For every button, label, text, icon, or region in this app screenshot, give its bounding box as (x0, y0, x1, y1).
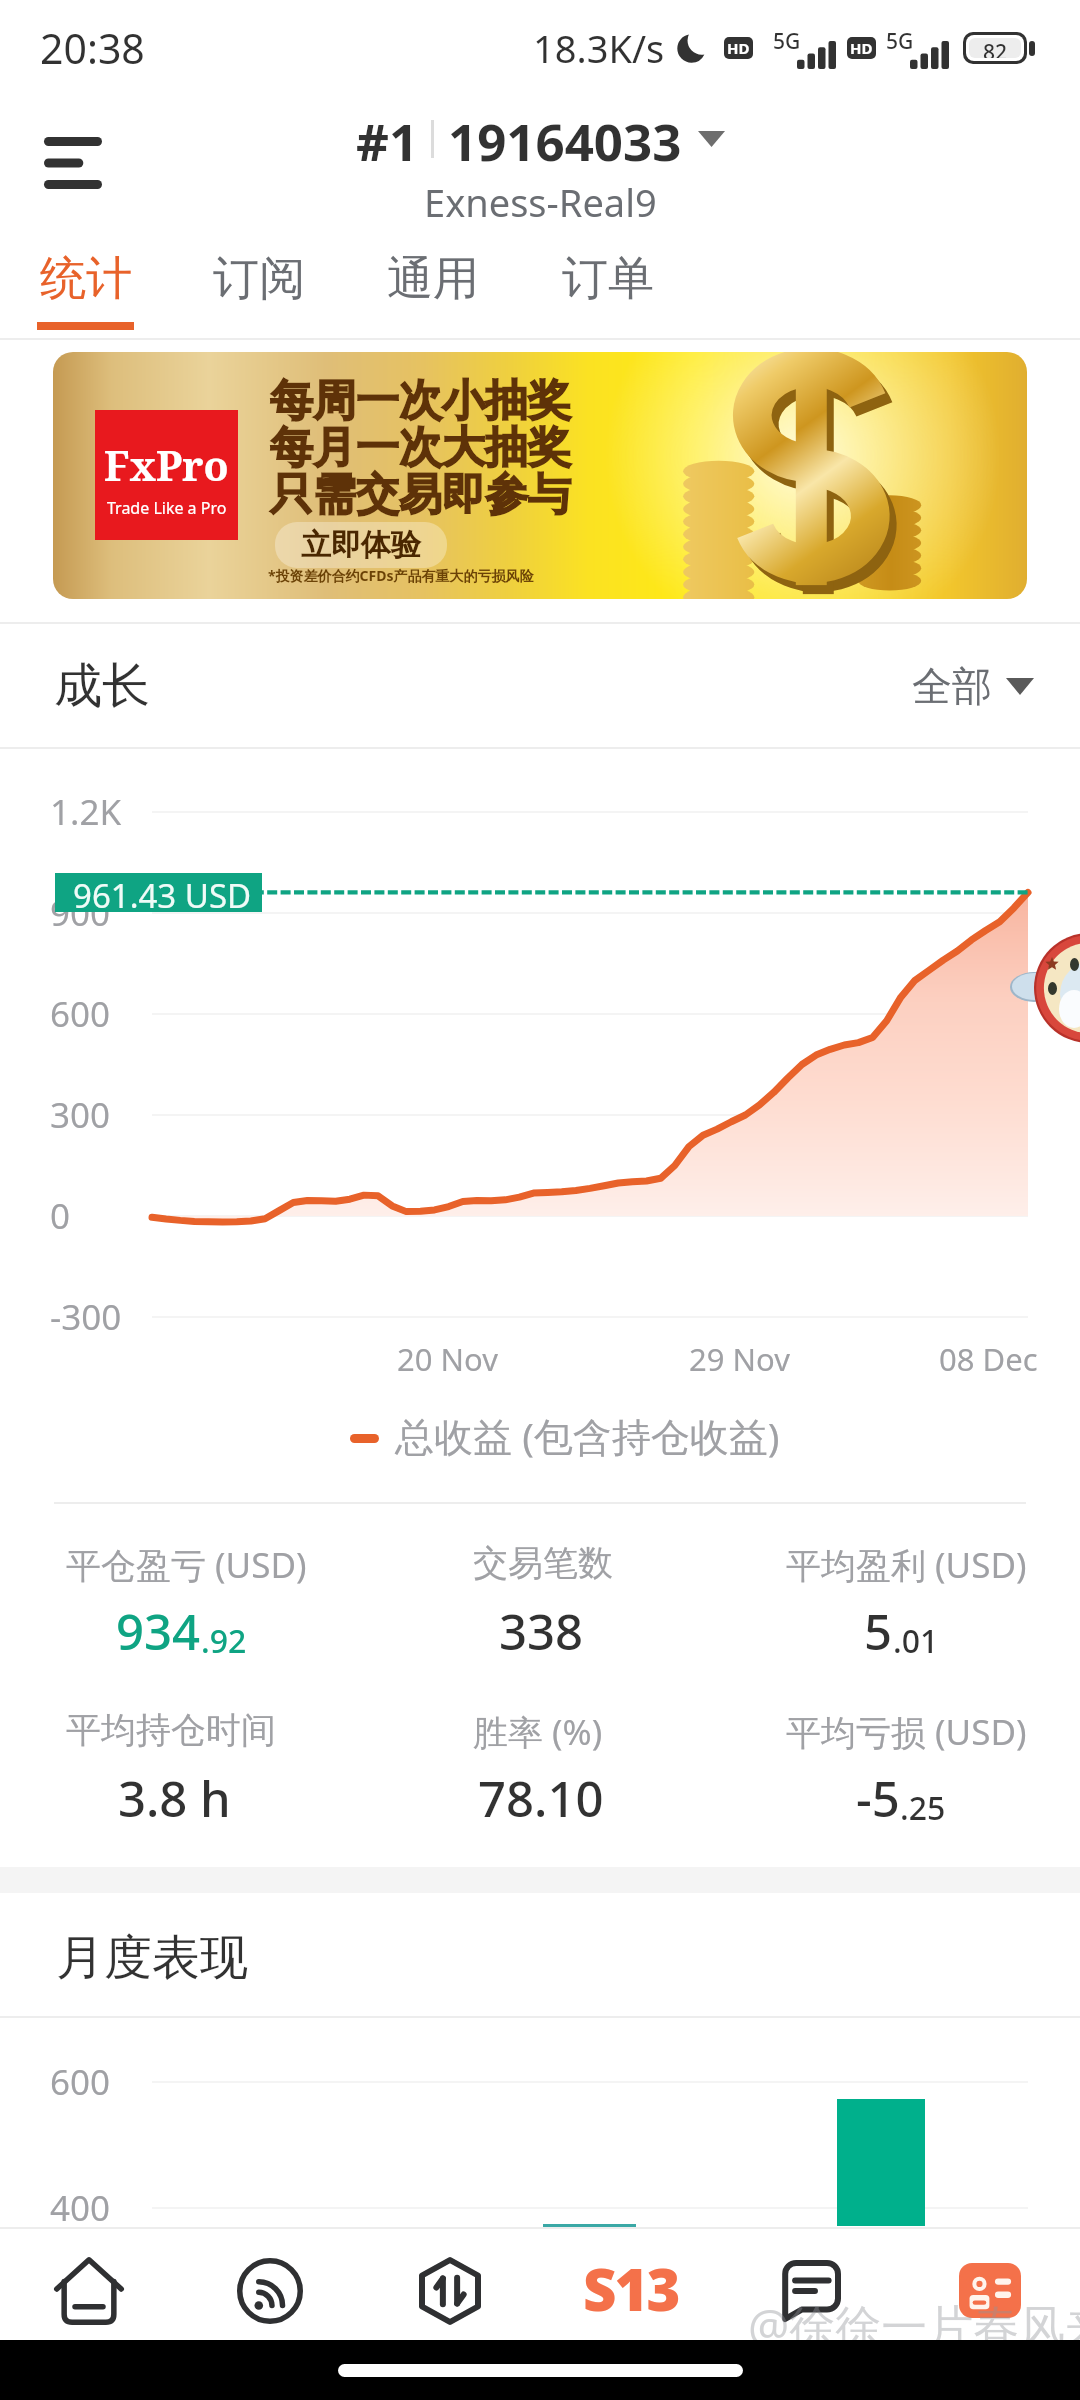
staticText: Exness-Real9 (424, 176, 657, 222)
staticText: 5G (886, 27, 914, 56)
staticText: Trade Like a Pro (107, 497, 227, 519)
staticText: 934 (116, 1598, 201, 1665)
staticText: 600 (50, 2058, 111, 2106)
staticText: .25 (900, 1786, 946, 1830)
staticText: 每周一次小抽奖 (270, 374, 571, 428)
staticText: 平均亏损 (USD) (786, 1708, 1027, 1756)
button[interactable]: S13 (541, 2235, 721, 2346)
staticText: 29 Nov (689, 1338, 790, 1380)
button[interactable]: 订单 (537, 222, 679, 340)
staticText: .92 (201, 1619, 247, 1663)
staticText: 5 (864, 1598, 893, 1665)
button[interactable]: FxPro (53, 352, 1027, 599)
staticText: 统计 (40, 250, 132, 308)
button[interactable]: Home (0, 2235, 179, 2346)
staticText: 订单 (562, 250, 654, 308)
staticText: FxPro (104, 437, 229, 493)
staticText: 5G (773, 27, 801, 56)
button[interactable]: 通用 (362, 222, 504, 340)
button[interactable]: 订阅 (188, 222, 330, 340)
staticText: 0 (50, 1192, 71, 1240)
staticText: 交易笔数 (473, 1541, 613, 1585)
staticText: -300 (50, 1293, 122, 1341)
staticText: 总收益 (包含持仓收益) (395, 1409, 780, 1462)
staticText: 600 (50, 990, 111, 1038)
button[interactable]: Trade (360, 2235, 540, 2346)
staticText: 18.3K/s (533, 22, 665, 74)
staticText: 20 Nov (397, 1338, 498, 1380)
staticText: 胜率 (%) (473, 1708, 603, 1756)
staticText: 82 (983, 38, 1008, 58)
staticText: 立即体验 (301, 526, 421, 564)
staticText: 只需交易即参与 (270, 468, 571, 522)
staticText: 订阅 (213, 250, 305, 308)
staticText: 1.2K (50, 788, 122, 836)
button[interactable]: Menu (16, 106, 130, 220)
staticText: 平仓盈亏 (USD) (66, 1541, 307, 1589)
staticText: 338 (499, 1598, 584, 1665)
staticText: #1 (356, 106, 419, 172)
staticText: .01 (893, 1619, 939, 1663)
button[interactable]: Accounts (900, 2235, 1080, 2346)
staticText: 月度表现 (56, 1928, 248, 1988)
staticText: 900 (50, 889, 111, 937)
staticText: 每月一次大抽奖 (270, 421, 571, 475)
staticText: 78.10 (478, 1765, 604, 1832)
staticText: 平均盈利 (USD) (786, 1541, 1027, 1589)
staticText: -5 (856, 1765, 900, 1832)
staticText: 3.8 h (118, 1765, 231, 1832)
staticText: HD (850, 38, 873, 58)
button[interactable]: 全部 (912, 661, 1034, 711)
staticText: 19164033 (448, 106, 682, 172)
staticText: S13 (583, 2249, 679, 2328)
staticText: 961.43 USD (73, 873, 252, 912)
button[interactable]: 统计 (15, 222, 157, 340)
staticText: 08 Dec (939, 1338, 1038, 1380)
staticText: @徐徐一片春风来 (748, 2294, 1080, 2357)
staticText: 20:38 (40, 20, 145, 76)
staticText: 平均持仓时间 (66, 1708, 276, 1752)
button[interactable]: Chat (720, 2235, 900, 2346)
staticText: 通用 (387, 250, 479, 308)
staticText: 全部 (912, 661, 992, 711)
staticText: 成长 (54, 656, 150, 716)
staticText: 300 (50, 1091, 111, 1139)
staticText: HD (727, 38, 750, 58)
staticText: *投资差价合约CFDs产品有重大的亏损风险 (268, 566, 534, 585)
staticText: 400 (50, 2184, 111, 2232)
button[interactable]: Signals (180, 2235, 360, 2346)
